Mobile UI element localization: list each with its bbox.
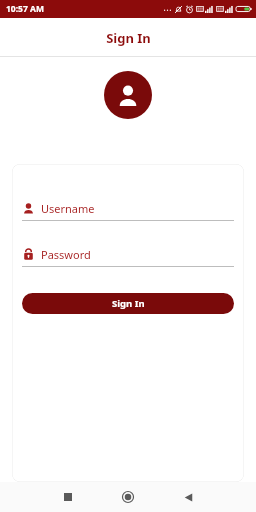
button[interactable]: Password xyxy=(22,247,234,267)
button[interactable]: Recent apps xyxy=(56,485,80,509)
button[interactable]: Username xyxy=(22,201,234,221)
staticText: Username xyxy=(41,201,95,216)
staticText: Sign In xyxy=(106,29,151,47)
staticText: Sign In xyxy=(112,297,145,310)
button[interactable]: Sign In xyxy=(22,293,234,314)
staticText: Password xyxy=(41,247,91,262)
button[interactable]: Home xyxy=(116,485,140,509)
button[interactable]: Back xyxy=(176,485,200,509)
staticText: 10:57 AM xyxy=(6,3,44,15)
